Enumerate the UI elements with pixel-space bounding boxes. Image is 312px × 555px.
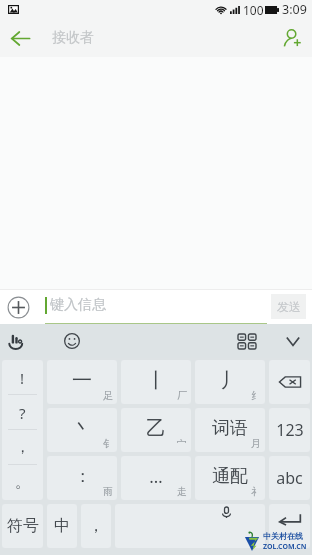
button[interactable]: 发送 — [271, 294, 306, 319]
staticText: 钅 — [103, 437, 113, 450]
staticText: ： — [74, 466, 91, 487]
staticText: 走 — [177, 485, 187, 498]
staticText: 。 — [15, 473, 30, 492]
button[interactable]: Enter — [269, 504, 310, 548]
staticText: 丨 — [146, 368, 166, 393]
button[interactable]: 一 — [47, 360, 117, 404]
button[interactable]: 丶 — [47, 408, 117, 452]
staticText: 中 — [54, 516, 70, 536]
staticText: 词语 — [212, 417, 248, 440]
button[interactable]: Space and voice input — [115, 504, 265, 548]
button[interactable]: 丿 — [195, 360, 265, 404]
button[interactable]: 乙 — [121, 408, 191, 452]
staticText: 键入信息 — [50, 296, 106, 314]
staticText: … — [149, 465, 163, 488]
button[interactable]: 键入信息 — [45, 289, 267, 324]
staticText: abc — [276, 467, 303, 489]
staticText: 月 — [251, 437, 261, 450]
button[interactable]: 词语 — [195, 408, 265, 452]
button[interactable]: Backspace — [269, 360, 310, 404]
staticText: 足 — [103, 389, 113, 402]
staticText: 发送 — [277, 299, 301, 314]
staticText: 一 — [72, 368, 92, 393]
button[interactable]: 符号 — [2, 504, 43, 548]
button[interactable]: Add contact — [274, 19, 312, 57]
staticText: 100 — [243, 2, 264, 18]
button[interactable]: 通配 — [195, 456, 265, 500]
staticText: 3:09 — [282, 1, 307, 18]
button[interactable]: 中 — [47, 504, 77, 548]
button[interactable]: Back — [0, 19, 40, 57]
staticText: ， — [88, 516, 104, 536]
staticText: ! — [20, 368, 25, 388]
staticText: 厂 — [177, 389, 187, 402]
staticText: 接收者 — [52, 29, 94, 47]
button[interactable]: ： — [47, 456, 117, 500]
staticText: 乙 — [146, 416, 166, 441]
staticText: 符号 — [7, 516, 39, 536]
staticText: 123 — [276, 419, 304, 441]
staticText: 纟 — [251, 389, 261, 402]
button[interactable]: Handwriting input — [2, 324, 30, 358]
button[interactable]: Switch keyboard layout — [232, 324, 262, 358]
button[interactable]: ， — [81, 504, 111, 548]
staticText: ? — [19, 403, 26, 423]
staticText: 宀 — [177, 437, 187, 450]
button[interactable]: Hide keyboard — [280, 324, 306, 358]
staticText: 通配 — [212, 465, 248, 488]
staticText: 雨 — [103, 485, 113, 498]
button[interactable]: Add attachment — [7, 296, 30, 319]
staticText: 中关村在线 — [263, 531, 303, 541]
button[interactable]: 123 — [269, 408, 310, 452]
staticText: 丿 — [220, 368, 240, 393]
button[interactable]: 丨 — [121, 360, 191, 404]
staticText: 丶 — [72, 416, 92, 441]
button[interactable]: Emoji — [57, 324, 87, 358]
staticText: ZOL.COM.CN — [263, 542, 307, 551]
staticText: ， — [15, 438, 30, 457]
button[interactable]: abc — [269, 456, 310, 500]
staticText: 礻 — [251, 485, 261, 498]
button[interactable]: … — [121, 456, 191, 500]
button[interactable]: ! — [2, 360, 43, 500]
